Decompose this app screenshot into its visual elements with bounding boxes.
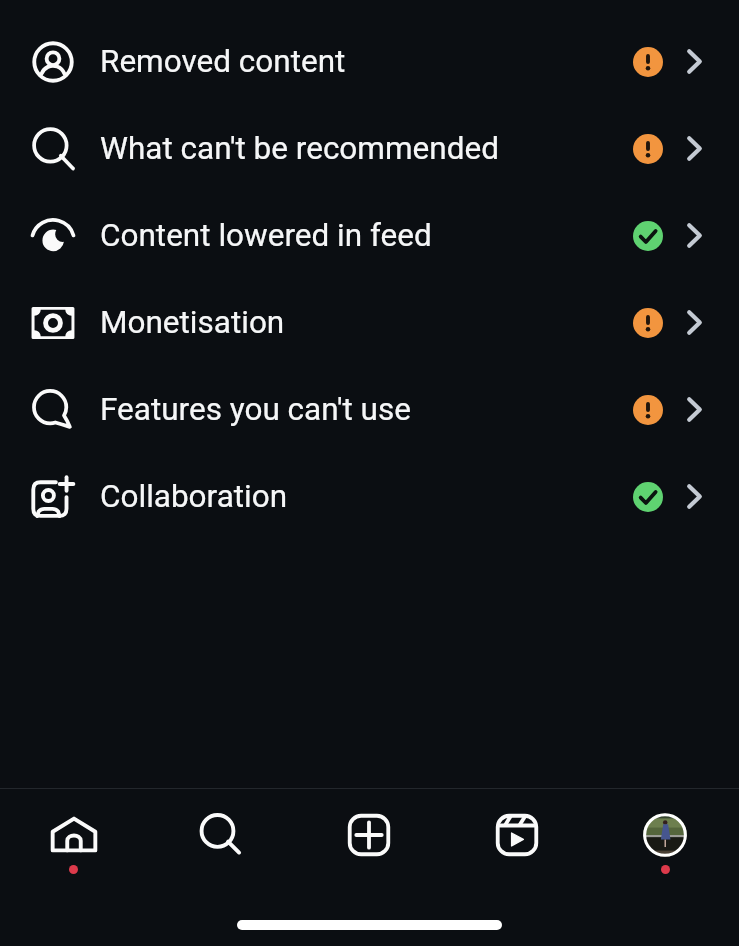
button[interactable]: Profile [591, 789, 739, 946]
button[interactable]: Content lowered in feed [0, 192, 739, 279]
button[interactable]: Search [147, 789, 295, 946]
button[interactable]: Collaboration [0, 453, 739, 540]
button[interactable]: What can't be recommended [0, 105, 739, 192]
button[interactable]: Features you can't use [0, 366, 739, 453]
staticText: Collaboration [100, 478, 288, 515]
staticText: Removed content [100, 43, 346, 80]
button[interactable]: Home [0, 789, 147, 946]
staticText: Monetisation [100, 304, 285, 341]
staticText: Features you can't use [100, 391, 411, 428]
button[interactable]: Create [295, 789, 443, 946]
button[interactable]: Removed content [0, 18, 739, 105]
button[interactable]: Reels [443, 789, 591, 946]
button[interactable]: Monetisation [0, 279, 739, 366]
staticText: Content lowered in feed [100, 217, 432, 254]
staticText: What can't be recommended [100, 130, 499, 167]
